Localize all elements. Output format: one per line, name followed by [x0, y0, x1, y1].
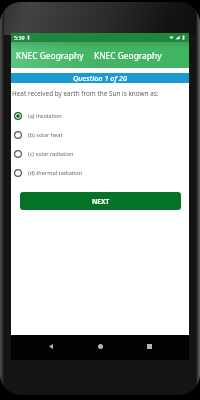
button[interactable]: Recents — [140, 337, 158, 355]
button[interactable]: KNEC Geography — [11, 42, 89, 68]
staticText: (b) solar heat — [28, 131, 63, 139]
button[interactable]: (b) solar heat — [11, 125, 189, 144]
staticText: 5:59 — [14, 34, 25, 41]
button[interactable]: Home — [91, 337, 109, 355]
staticText: KNEC Geography — [94, 50, 162, 61]
staticText: (d) thermal radiation — [28, 169, 83, 177]
button[interactable]: (a) insolation — [11, 106, 189, 125]
staticText: (c) solar radiation — [28, 150, 74, 158]
staticText: Heat received by earth from the Sun is k… — [12, 89, 159, 98]
button[interactable]: Back — [42, 337, 60, 355]
button[interactable]: (c) solar radiation — [11, 144, 189, 163]
button[interactable]: NEXT — [20, 192, 181, 210]
staticText: (a) insolation — [28, 112, 62, 120]
button[interactable]: KNEC Geography — [89, 42, 167, 68]
staticText: NEXT — [92, 197, 110, 206]
staticText: Question 1 of 20 — [73, 73, 127, 83]
button[interactable]: (d) thermal radiation — [11, 163, 189, 182]
staticText: KNEC Geography — [16, 50, 84, 61]
